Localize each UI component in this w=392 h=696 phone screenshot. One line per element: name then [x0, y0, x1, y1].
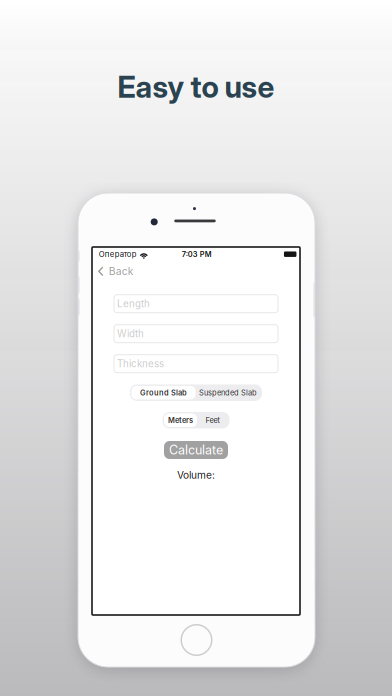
button[interactable]: Ground Slab — [131, 386, 195, 399]
button[interactable]: Meters — [164, 413, 197, 427]
button[interactable]: Length — [114, 295, 278, 313]
staticText: Back — [109, 265, 134, 278]
staticText: Easy to use — [117, 69, 274, 105]
staticText: 7:03 PM — [182, 250, 212, 259]
staticText: Оператор — [99, 249, 137, 259]
staticText: Volume: — [177, 469, 215, 481]
staticText: Suspended Slab — [199, 388, 257, 397]
button[interactable]: Thickness — [114, 355, 278, 373]
button[interactable]: Calculate — [164, 441, 228, 459]
staticText: Ground Slab — [140, 388, 187, 397]
button[interactable]: Width — [114, 325, 278, 343]
staticText: Thickness — [117, 358, 164, 370]
staticText: Calculate — [169, 442, 223, 458]
button[interactable]: Back — [92, 262, 140, 280]
button[interactable]: Suspended Slab — [195, 386, 260, 399]
staticText: Meters — [168, 416, 193, 425]
staticText: Width — [117, 328, 144, 340]
staticText: Feet — [205, 416, 219, 425]
staticText: Length — [117, 298, 150, 310]
button[interactable]: Feet — [197, 413, 228, 427]
